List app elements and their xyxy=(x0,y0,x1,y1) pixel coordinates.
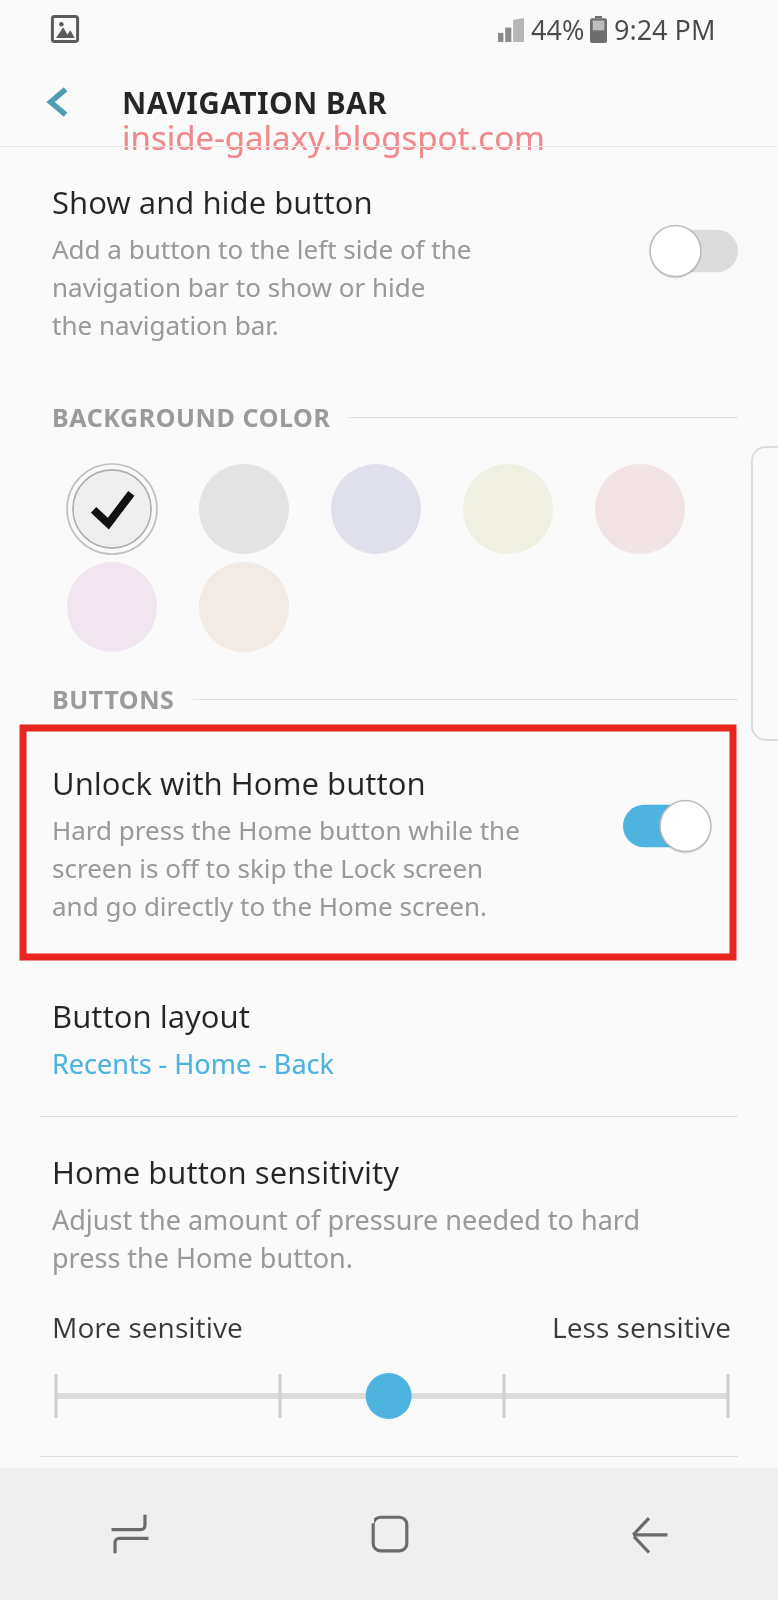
button[interactable]: Background color option 7 xyxy=(178,558,310,656)
staticText: inside-galaxy.blogspot.com xyxy=(122,115,545,160)
button[interactable]: Button layout xyxy=(0,991,778,1100)
staticText: Unlock with Home button xyxy=(52,762,426,804)
button[interactable]: Background color option 2 xyxy=(178,460,310,558)
staticText: BUTTONS xyxy=(52,682,175,716)
button[interactable]: Background color option 3 xyxy=(310,460,442,558)
button[interactable]: Toggle on xyxy=(623,800,709,852)
button[interactable]: Background color option 6 xyxy=(46,558,178,656)
staticText: 44% xyxy=(531,11,585,48)
staticText: Show and hide button xyxy=(52,181,373,223)
button[interactable]: Back xyxy=(519,1468,778,1600)
staticText: 9:24 PM xyxy=(614,11,716,48)
staticText: Recents - Home - Back xyxy=(52,1045,334,1082)
button[interactable]: Background color option 5 xyxy=(574,460,706,558)
button[interactable]: Home xyxy=(260,1468,519,1600)
button[interactable]: Toggle off xyxy=(652,225,738,277)
staticText: BACKGROUND COLOR xyxy=(52,400,331,434)
staticText: Adjust the amount of pressure needed to … xyxy=(52,1201,672,1276)
button[interactable]: Background color option 1 xyxy=(46,460,178,558)
staticText: Button layout xyxy=(52,995,250,1037)
staticText: NAVIGATION BAR xyxy=(122,82,387,123)
button[interactable]: Recents xyxy=(0,1468,260,1600)
staticText: Add a button to the left side of the nav… xyxy=(52,231,472,342)
staticText: Hard press the Home button while the scr… xyxy=(52,812,522,923)
button[interactable]: Show and hide button xyxy=(0,175,778,352)
button[interactable]: Back xyxy=(28,71,90,133)
button[interactable]: Unlock with Home button xyxy=(23,728,733,957)
staticText: Home button sensitivity xyxy=(52,1151,400,1193)
staticText: More sensitive xyxy=(52,1308,243,1346)
staticText: Less sensitive xyxy=(552,1308,732,1346)
button[interactable]: Background color option 4 xyxy=(442,460,574,558)
button[interactable]: Home button sensitivity slider xyxy=(52,1368,732,1424)
